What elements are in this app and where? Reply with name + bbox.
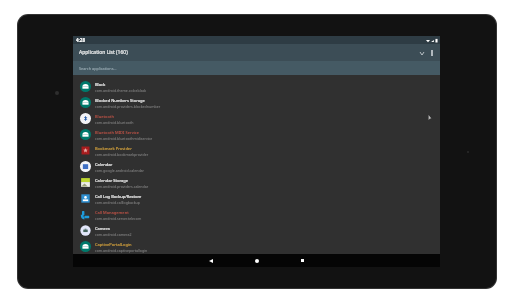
button[interactable]: Home bbox=[251, 255, 262, 266]
staticText: 4:28 bbox=[76, 37, 85, 43]
staticText: Bluetooth MIDI Service bbox=[95, 130, 140, 135]
button[interactable]: Calendar Storage bbox=[73, 174, 440, 190]
staticText: Calendar bbox=[95, 162, 113, 167]
button[interactable]: Call Management bbox=[73, 206, 440, 222]
button[interactable]: Bookmark Provider bbox=[73, 142, 440, 158]
staticText: com.android.captiveportallogin bbox=[95, 248, 148, 253]
staticText: com.android.theme.color.black bbox=[95, 88, 147, 93]
staticText: Camera bbox=[95, 226, 110, 231]
button[interactable]: Black bbox=[73, 78, 440, 94]
staticText: com.android.providers.blockednumber bbox=[95, 104, 161, 109]
button[interactable]: Search applications... bbox=[73, 61, 440, 75]
staticText: Bluetooth bbox=[95, 114, 114, 119]
staticText: CaptivePortalLogin bbox=[95, 242, 132, 247]
staticText: com.android.bluetoothmidiservice bbox=[95, 136, 153, 141]
button[interactable]: Bluetooth bbox=[73, 110, 440, 126]
button[interactable]: Blocked Numbers Storage bbox=[73, 94, 440, 110]
button[interactable]: CaptivePortalLogin bbox=[73, 238, 440, 254]
staticText: com.android.providers.calendar bbox=[95, 184, 149, 189]
staticText: com.android.server.telecom bbox=[95, 216, 142, 221]
button[interactable]: Expand filter bbox=[417, 48, 427, 58]
button[interactable]: Back bbox=[205, 255, 216, 266]
button[interactable]: Recent apps bbox=[297, 255, 308, 266]
button[interactable]: Calendar bbox=[73, 158, 440, 174]
staticText: com.android.bluetooth bbox=[95, 120, 134, 125]
staticText: Call Log Backup/Restore bbox=[95, 194, 142, 199]
staticText: Calendar Storage bbox=[95, 178, 129, 183]
staticText: Application List (160) bbox=[79, 49, 128, 56]
button[interactable]: More options bbox=[427, 48, 437, 58]
staticText: Blocked Numbers Storage bbox=[95, 98, 145, 103]
staticText: com.android.calllogbackup bbox=[95, 200, 140, 205]
staticText: Black bbox=[95, 82, 106, 87]
staticText: com.google.android.calendar bbox=[95, 168, 145, 173]
button[interactable]: Camera bbox=[73, 222, 440, 238]
staticText: com.android.bookmarkprovider bbox=[95, 152, 149, 157]
button[interactable]: Bluetooth MIDI Service bbox=[73, 126, 440, 142]
staticText: Bookmark Provider bbox=[95, 146, 132, 151]
button[interactable]: Call Log Backup/Restore bbox=[73, 190, 440, 206]
staticText: Search applications... bbox=[79, 66, 117, 71]
staticText: Call Management bbox=[95, 210, 129, 215]
staticText: com.android.camera2 bbox=[95, 232, 132, 237]
